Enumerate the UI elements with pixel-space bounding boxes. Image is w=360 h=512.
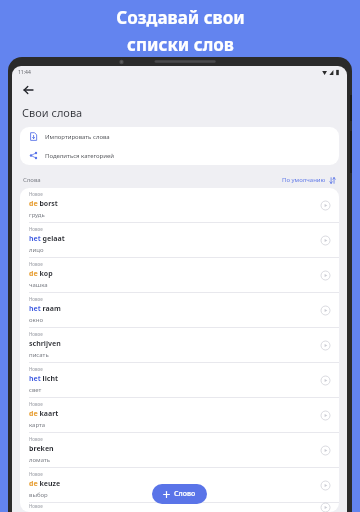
staticText: Новое (29, 401, 43, 407)
button[interactable]: Новое (20, 293, 339, 327)
button[interactable]: Произнести (319, 269, 332, 282)
staticText: breken (29, 444, 54, 454)
button[interactable]: Произнести (319, 199, 332, 212)
staticText: Новое (29, 296, 43, 302)
button[interactable]: Произнести (319, 339, 332, 352)
button[interactable]: Новое (20, 223, 339, 257)
staticText: Создавай свои (116, 6, 245, 29)
button[interactable]: Новое (20, 363, 339, 397)
staticText: лицо (29, 246, 44, 254)
button[interactable]: Произнести (319, 409, 332, 422)
button[interactable]: Произнести (319, 374, 332, 387)
button[interactable]: Произнести (319, 304, 332, 317)
button[interactable]: Новое (20, 398, 339, 432)
staticText: списки слов (127, 33, 234, 56)
button[interactable]: Новое (20, 503, 339, 512)
staticText: Новое (29, 436, 43, 442)
staticText: Слова (23, 176, 41, 184)
button[interactable]: Новое (20, 433, 339, 467)
button[interactable]: Слово (152, 484, 207, 504)
staticText: карта (29, 421, 46, 429)
staticText: de borst (29, 199, 58, 209)
staticText: Свои слова (22, 105, 83, 120)
staticText: Поделиться категорией (45, 152, 114, 160)
staticText: писать (29, 351, 49, 359)
staticText: Новое (29, 226, 43, 232)
button[interactable]: Произнести (319, 503, 332, 512)
staticText: свет (29, 386, 42, 394)
button[interactable]: Произнести (319, 444, 332, 457)
button[interactable]: Произнести (319, 479, 332, 492)
staticText: de kop (29, 269, 53, 279)
staticText: чашка (29, 281, 48, 289)
staticText: de kaart (29, 409, 59, 419)
staticText: окно (29, 316, 43, 324)
staticText: schrijven (29, 339, 61, 349)
button[interactable]: Импортировать слова (20, 127, 339, 146)
button[interactable]: Назад (18, 80, 38, 100)
staticText: грудь (29, 211, 45, 219)
staticText: Новое (29, 471, 43, 477)
staticText: het gelaat (29, 234, 65, 244)
staticText: de keuze (29, 479, 61, 489)
button[interactable]: Новое (20, 328, 339, 362)
staticText: Новое (29, 366, 43, 372)
button[interactable]: Новое (20, 188, 339, 222)
staticText: Новое (29, 503, 43, 509)
staticText: По умолчанию (282, 176, 326, 184)
button[interactable]: Новое (20, 258, 339, 292)
button[interactable]: По умолчанию (282, 176, 336, 184)
staticText: 11:44 (18, 69, 31, 76)
staticText: Новое (29, 331, 43, 337)
staticText: Новое (29, 191, 43, 197)
staticText: выбор (29, 491, 48, 499)
staticText: het raam (29, 304, 61, 314)
staticText: ломать (29, 456, 51, 464)
staticText: Слово (174, 489, 196, 499)
staticText: Новое (29, 261, 43, 267)
button[interactable]: Новое (20, 468, 339, 502)
button[interactable]: Произнести (319, 234, 332, 247)
button[interactable]: Поделиться категорией (20, 146, 339, 165)
staticText: Импортировать слова (45, 133, 110, 141)
staticText: het licht (29, 374, 58, 384)
